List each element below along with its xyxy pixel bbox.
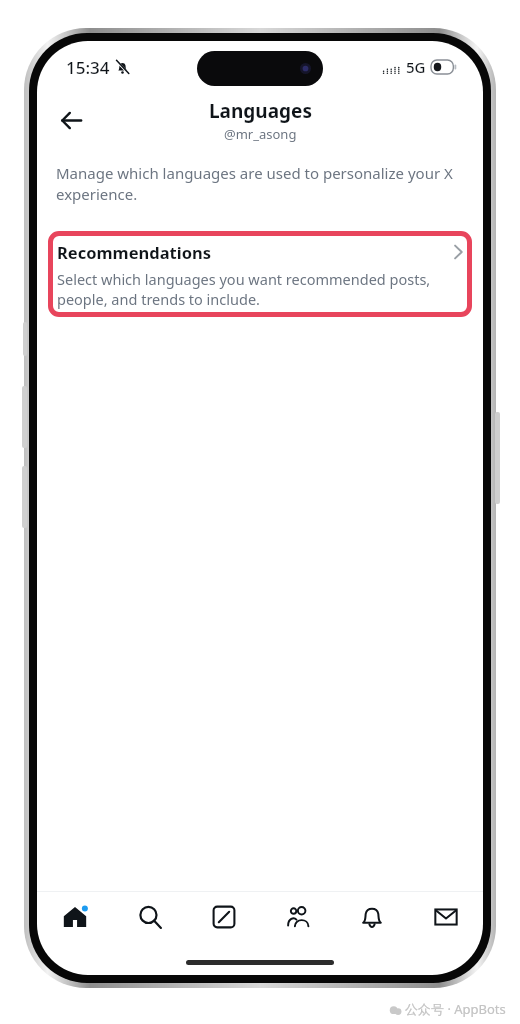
staticText: 5G xyxy=(406,57,426,77)
staticText: 公众号 · AppBots xyxy=(405,1000,506,1018)
button[interactable]: Communities xyxy=(261,892,335,942)
staticText: Manage which languages are used to perso… xyxy=(56,163,457,205)
staticText: @mr_asong xyxy=(224,125,297,143)
button[interactable]: Notifications xyxy=(335,892,409,942)
button[interactable]: Search xyxy=(112,892,187,942)
staticText: 15:34 xyxy=(66,56,110,79)
staticText: Recommendations xyxy=(57,241,211,263)
button[interactable]: Messages xyxy=(409,892,483,942)
staticText: Select which languages you want recommen… xyxy=(57,269,463,309)
button[interactable]: Recommendations xyxy=(48,231,472,317)
button[interactable]: Compose xyxy=(187,892,261,942)
button[interactable]: Back xyxy=(49,98,93,142)
staticText: Languages xyxy=(209,98,312,124)
button[interactable]: Home xyxy=(37,892,112,942)
